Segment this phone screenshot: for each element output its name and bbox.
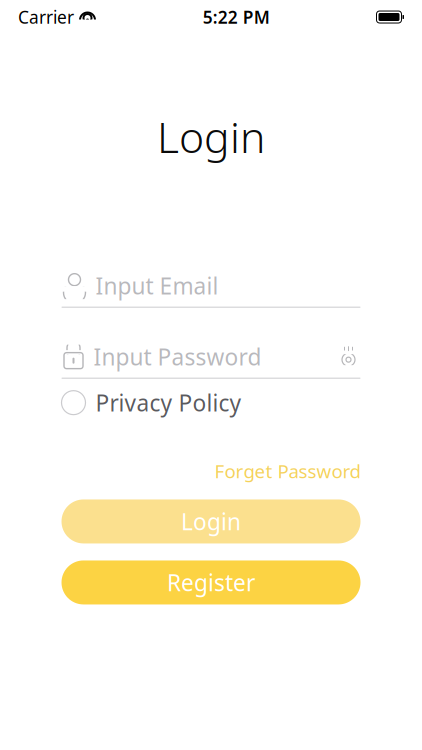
staticText: Login: [181, 506, 241, 536]
staticText: Input Password: [93, 342, 261, 372]
staticText: Login: [157, 108, 265, 165]
staticText: Forget Password: [214, 459, 360, 483]
staticText: Privacy Policy: [95, 388, 241, 418]
staticText: Carrier: [18, 5, 74, 28]
button[interactable]: Forget Password: [214, 459, 360, 483]
staticText: Input Email: [95, 271, 218, 301]
button[interactable]: Login: [61, 499, 360, 543]
staticText: Register: [167, 567, 255, 597]
button[interactable]: Privacy Policy: [61, 385, 360, 421]
staticText: 5:22 PM: [203, 5, 270, 28]
button[interactable]: Register: [61, 560, 360, 604]
button[interactable]: Show password: [336, 346, 360, 368]
